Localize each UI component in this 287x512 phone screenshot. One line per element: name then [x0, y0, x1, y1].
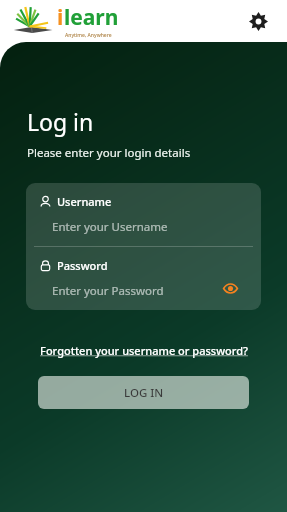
staticText: Forgotten your username or password? — [40, 343, 248, 358]
button[interactable]: Username — [26, 183, 261, 246]
button[interactable]: Show password — [219, 277, 241, 299]
staticText: learn — [64, 3, 119, 32]
staticText: Anytime, Anywhere — [65, 32, 112, 39]
button[interactable]: Settings — [243, 6, 273, 36]
staticText: Password — [57, 258, 108, 273]
staticText: i — [57, 3, 64, 32]
button[interactable]: iLearn — [12, 3, 119, 39]
staticText: Log in — [27, 106, 94, 137]
staticText: LOG IN — [124, 385, 164, 401]
staticText: Username — [57, 194, 112, 209]
button[interactable]: Forgotten your username or password? — [38, 343, 249, 358]
staticText: Enter your Password — [52, 283, 164, 299]
staticText: Please enter your login details — [27, 145, 191, 161]
button[interactable]: LOG IN — [38, 376, 249, 409]
staticText: Enter your Username — [52, 219, 168, 235]
button[interactable]: Password — [26, 247, 261, 310]
